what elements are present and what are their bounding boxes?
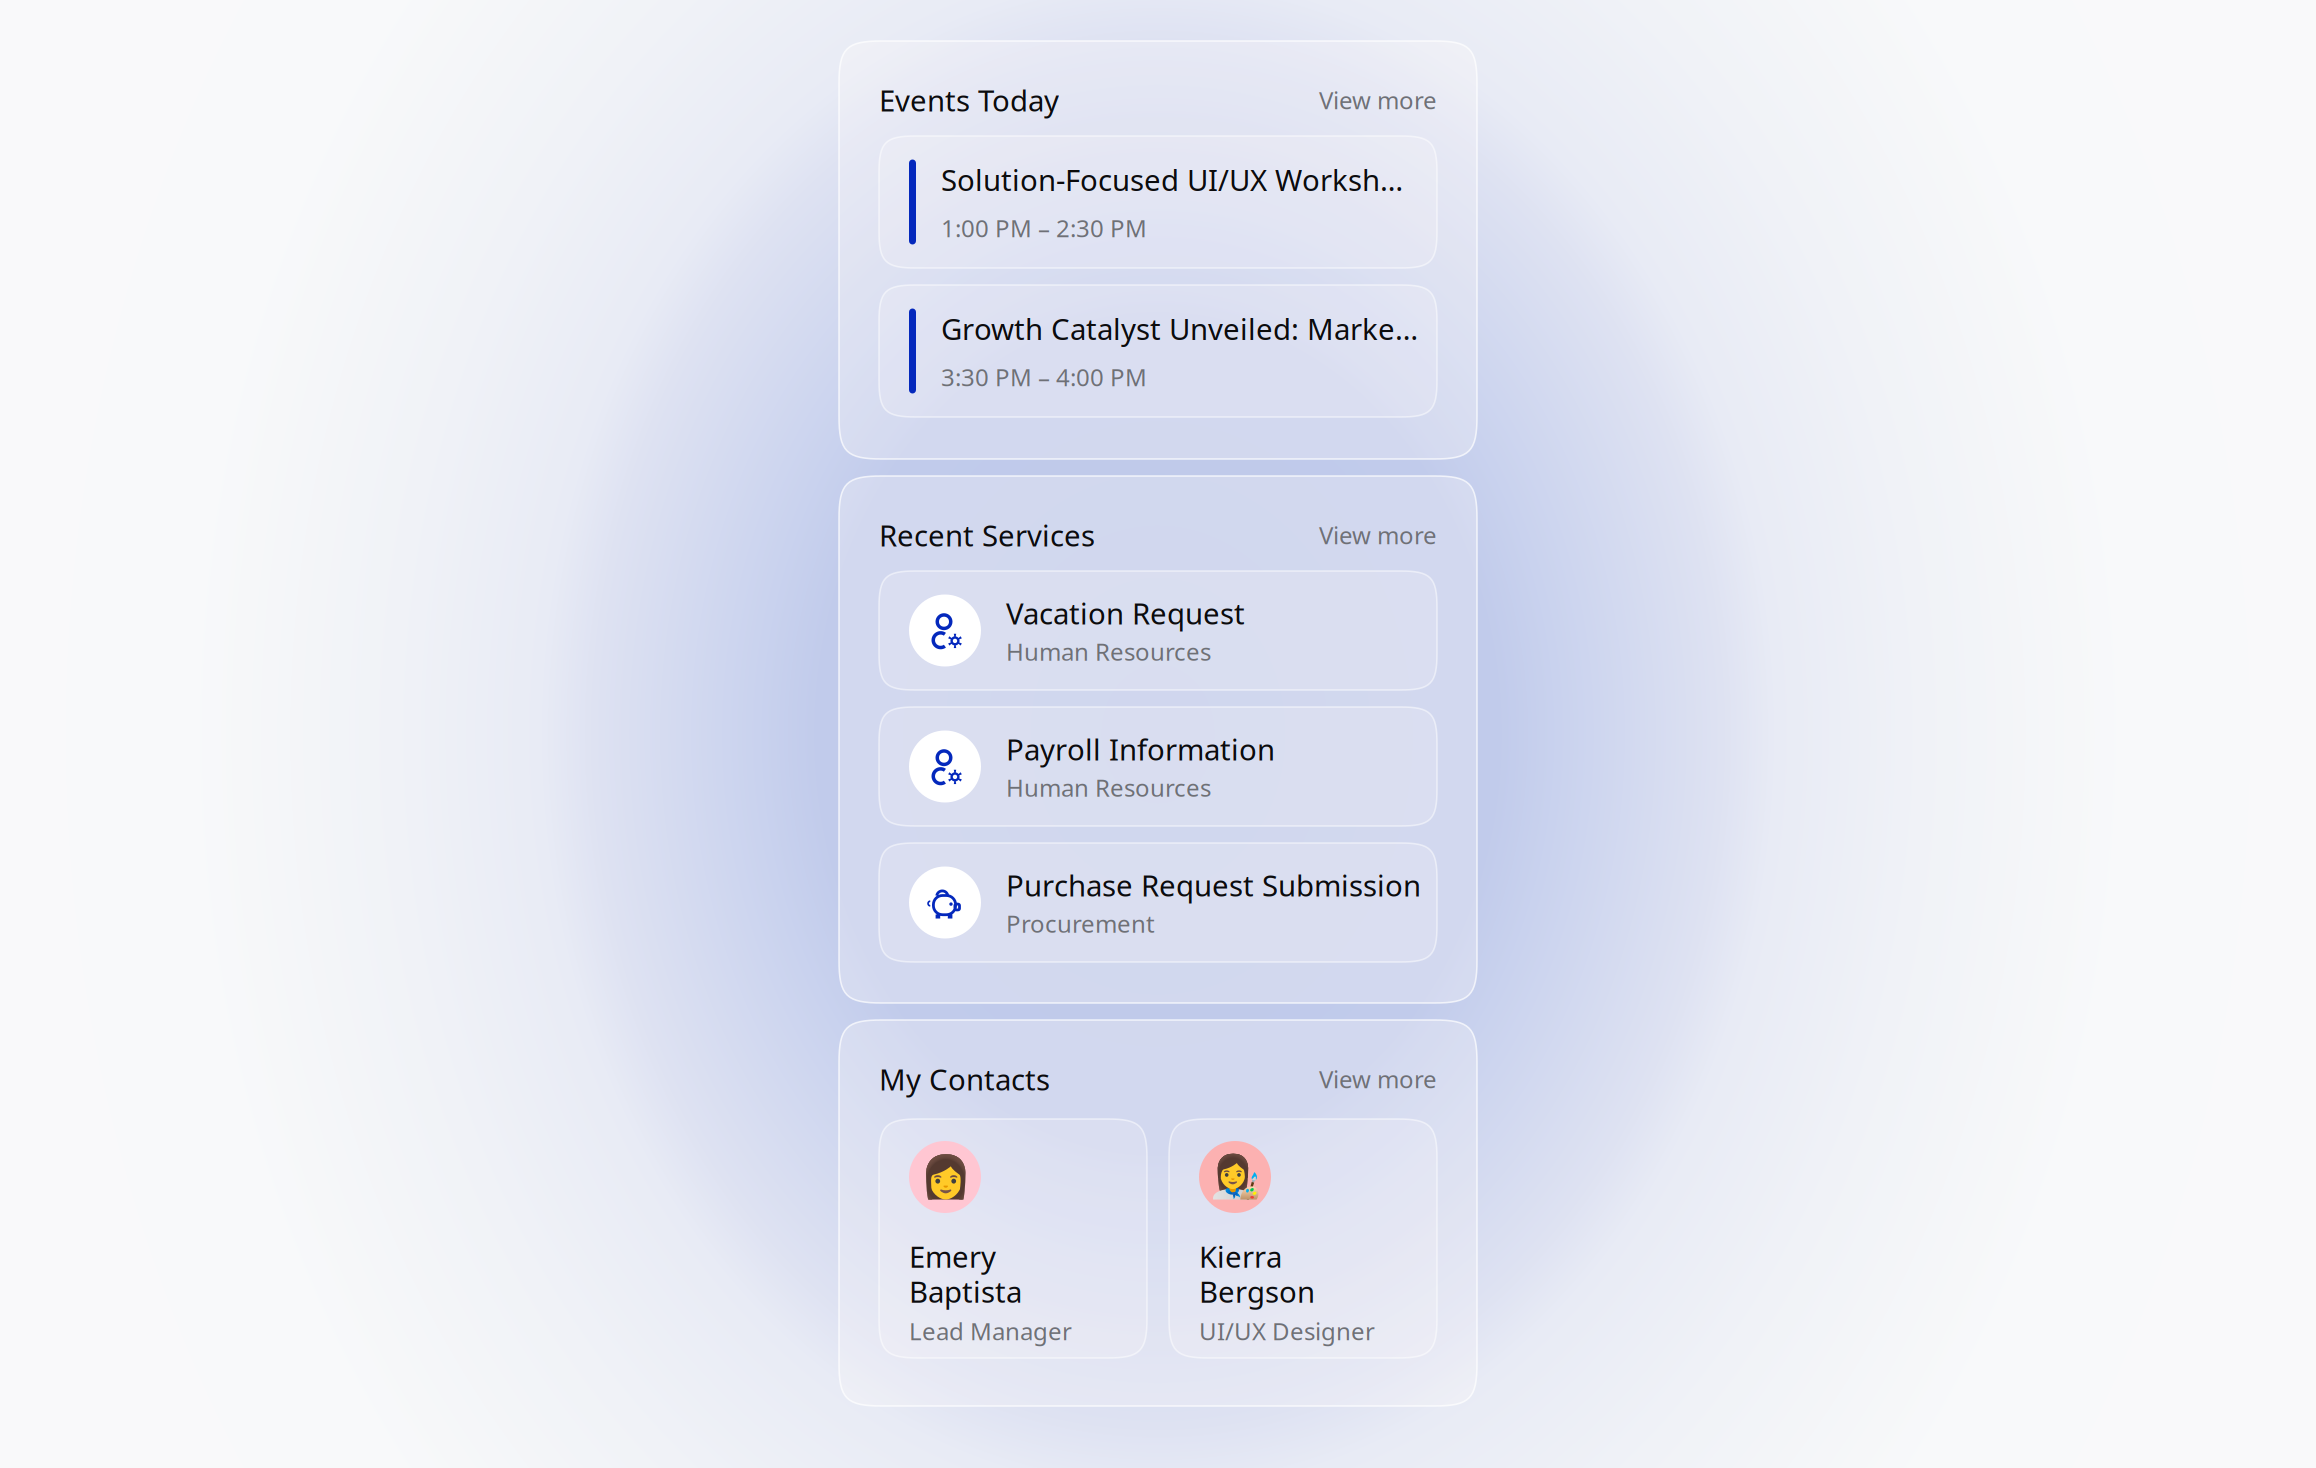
button[interactable]: View more xyxy=(1319,1063,1437,1095)
staticText: 👩‍🎨 xyxy=(1209,1153,1260,1201)
staticText: Lead Manager xyxy=(909,1315,1072,1347)
staticText: Human Resources xyxy=(1006,771,1211,803)
staticText: Payroll Information xyxy=(1006,730,1275,769)
staticText: Bergson xyxy=(1199,1272,1315,1311)
button[interactable]: Solution-Focused UI/UX Worksh… xyxy=(879,136,1437,268)
button[interactable]: Purchase Request Submission xyxy=(879,843,1437,962)
staticText: My Contacts xyxy=(879,1059,1050,1098)
staticText: View more xyxy=(1319,519,1437,551)
button[interactable]: Vacation Request xyxy=(879,571,1437,690)
button[interactable]: Growth Catalyst Unveiled: Marke… xyxy=(879,285,1437,417)
staticText: Recent Services xyxy=(879,515,1095,554)
staticText: 3:30 PM – 4:00 PM xyxy=(941,361,1147,393)
staticText: View more xyxy=(1319,84,1437,116)
staticText: 1:00 PM – 2:30 PM xyxy=(941,212,1147,244)
staticText: Solution-Focused UI/UX Worksh… xyxy=(941,160,1403,199)
staticText: 👩 xyxy=(919,1153,970,1201)
staticText: Emery xyxy=(909,1237,996,1276)
button[interactable]: 👩‍🎨 xyxy=(1169,1119,1437,1358)
staticText: Baptista xyxy=(909,1272,1022,1311)
staticText: Purchase Request Submission xyxy=(1006,866,1421,905)
staticText: Kierra xyxy=(1199,1237,1282,1276)
staticText: View more xyxy=(1319,1063,1437,1095)
button[interactable]: View more xyxy=(1319,519,1437,551)
button[interactable]: View more xyxy=(1319,84,1437,116)
staticText: UI/UX Designer xyxy=(1199,1315,1375,1347)
staticText: Human Resources xyxy=(1006,635,1211,667)
staticText: Procurement xyxy=(1006,907,1155,939)
staticText: Vacation Request xyxy=(1006,594,1245,633)
button[interactable]: Payroll Information xyxy=(879,707,1437,826)
staticText: Growth Catalyst Unveiled: Marke… xyxy=(941,309,1418,348)
button[interactable]: 👩 xyxy=(879,1119,1147,1358)
staticText: Events Today xyxy=(879,80,1059,119)
